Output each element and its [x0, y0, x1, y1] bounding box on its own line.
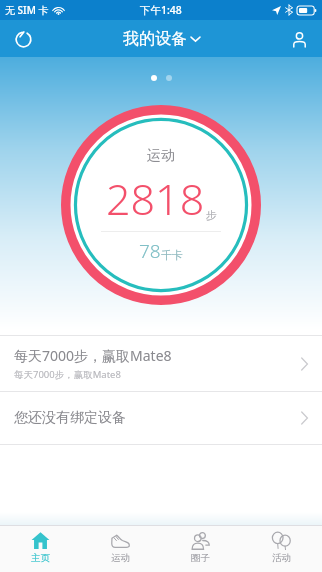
- button[interactable]: 运动: [80, 526, 160, 572]
- staticText: 运动: [111, 552, 130, 564]
- staticText: 78: [139, 238, 161, 264]
- button[interactable]: Logo: [8, 24, 38, 54]
- button[interactable]: 您还没有绑定设备: [0, 392, 322, 444]
- staticText: 2818: [106, 169, 205, 228]
- button[interactable]: 每天7000步，赢取Mate8: [0, 336, 322, 391]
- staticText: 无 SIM 卡: [5, 3, 49, 17]
- staticText: 我的设备: [123, 29, 187, 49]
- staticText: 下午1:48: [140, 3, 182, 17]
- button[interactable]: 主页: [0, 526, 80, 572]
- staticText: 活动: [272, 552, 291, 564]
- button[interactable]: Profile: [284, 24, 314, 54]
- button[interactable]: 活动: [241, 526, 322, 572]
- staticText: 每天7000步，赢取Mate8: [14, 346, 172, 365]
- staticText: 您还没有绑定设备: [14, 409, 301, 427]
- staticText: 步: [206, 208, 217, 222]
- button[interactable]: 圈子: [160, 526, 241, 572]
- staticText: 圈子: [191, 552, 210, 564]
- staticText: 千卡: [161, 248, 183, 262]
- button[interactable]: 我的设备: [115, 26, 208, 52]
- staticText: 每天7000步，赢取Mate8: [14, 368, 121, 381]
- staticText: 运动: [147, 147, 175, 165]
- staticText: 主页: [31, 552, 50, 564]
